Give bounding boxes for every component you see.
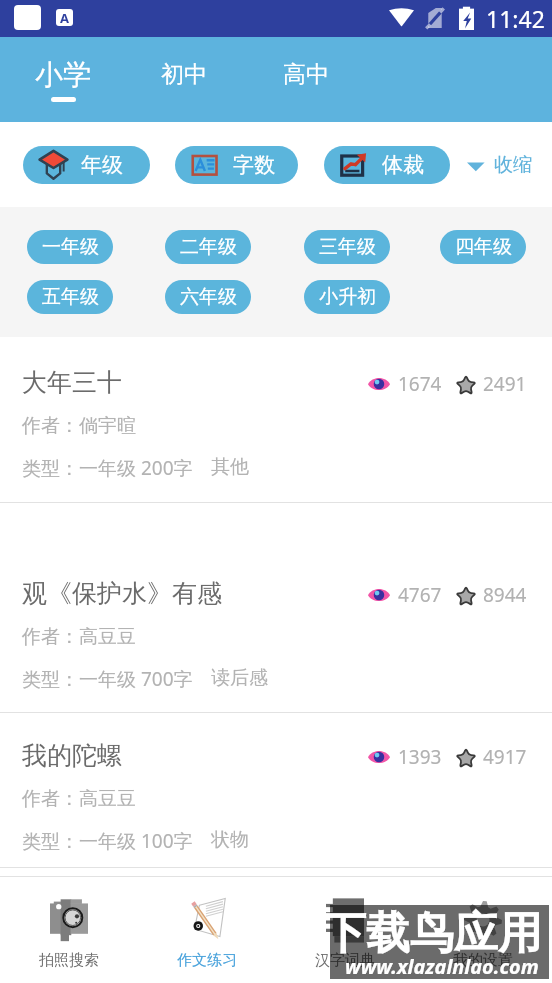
button[interactable]: 作文练习 — [138, 876, 276, 983]
staticText: 收缩 — [494, 153, 532, 177]
button[interactable]: 体裁 — [324, 146, 450, 184]
staticText: 作文练习 — [177, 951, 237, 970]
staticText: 大年三十 — [22, 367, 122, 398]
button[interactable]: 字数 — [175, 146, 298, 184]
staticText: 初中 — [161, 60, 207, 89]
button[interactable]: 观《保护水》有感 — [0, 503, 552, 713]
staticText: 类型：一年级 100字 — [22, 828, 193, 854]
staticText: 六年级 — [180, 285, 237, 309]
staticText: 观《保护水》有感 — [22, 578, 222, 609]
staticText: 我的陀螺 — [22, 740, 122, 771]
staticText: 拍照搜索 — [39, 951, 99, 970]
button[interactable]: 汉字词典 — [276, 876, 414, 983]
staticText: 作者：倘宇暄 — [22, 414, 136, 438]
staticText: 类型：一年级 200字 — [22, 455, 193, 481]
button[interactable]: 我的设置 — [414, 876, 552, 983]
button[interactable]: 小升初 — [304, 280, 390, 314]
staticText: 一年级 — [42, 235, 99, 259]
button[interactable]: 三年级 — [304, 230, 390, 264]
button[interactable]: 高中 — [279, 37, 333, 122]
button[interactable]: 大年三十 — [0, 337, 552, 503]
staticText: 作者：高豆豆 — [22, 625, 136, 649]
staticText: 1393 — [398, 744, 442, 770]
staticText: 二年级 — [180, 235, 237, 259]
button[interactable]: 收缩 — [465, 146, 532, 184]
button[interactable]: 小学 — [31, 37, 95, 122]
staticText: 小学 — [35, 57, 91, 92]
button[interactable]: 一年级 — [27, 230, 113, 264]
staticText: 2491 — [483, 371, 527, 397]
staticText: 状物 — [211, 828, 249, 852]
button[interactable]: 四年级 — [440, 230, 526, 264]
staticText: 类型：一年级 700字 — [22, 666, 193, 692]
staticText: 小升初 — [319, 285, 376, 309]
staticText: 4917 — [483, 744, 527, 770]
staticText: 4767 — [398, 582, 442, 608]
button[interactable]: 六年级 — [165, 280, 251, 314]
button[interactable]: 初中 — [157, 37, 211, 122]
staticText: 其他 — [211, 455, 249, 479]
button[interactable]: 五年级 — [27, 280, 113, 314]
staticText: www.xlazalnlao.com — [345, 953, 552, 980]
staticText: 11:42 — [486, 3, 545, 34]
staticText: 三年级 — [319, 235, 376, 259]
staticText: 汉字词典 — [315, 951, 375, 970]
button[interactable]: 我的陀螺 — [0, 713, 552, 868]
staticText: 8944 — [483, 582, 527, 608]
staticText: 四年级 — [455, 235, 512, 259]
staticText: 1674 — [398, 371, 442, 397]
staticText: A — [60, 9, 69, 26]
staticText: 我的设置 — [453, 951, 513, 970]
button[interactable]: 拍照搜索 — [0, 876, 138, 983]
staticText: 高中 — [283, 60, 329, 89]
staticText: 下载鸟应用 — [322, 906, 541, 961]
button[interactable]: 年级 — [23, 146, 150, 184]
staticText: 作者：高豆豆 — [22, 787, 136, 811]
staticText: 体裁 — [382, 152, 424, 178]
staticText: 五年级 — [42, 285, 99, 309]
staticText: 年级 — [81, 152, 123, 178]
staticText: 字数 — [233, 152, 275, 178]
staticText: 读后感 — [211, 666, 268, 690]
button[interactable]: 二年级 — [165, 230, 251, 264]
